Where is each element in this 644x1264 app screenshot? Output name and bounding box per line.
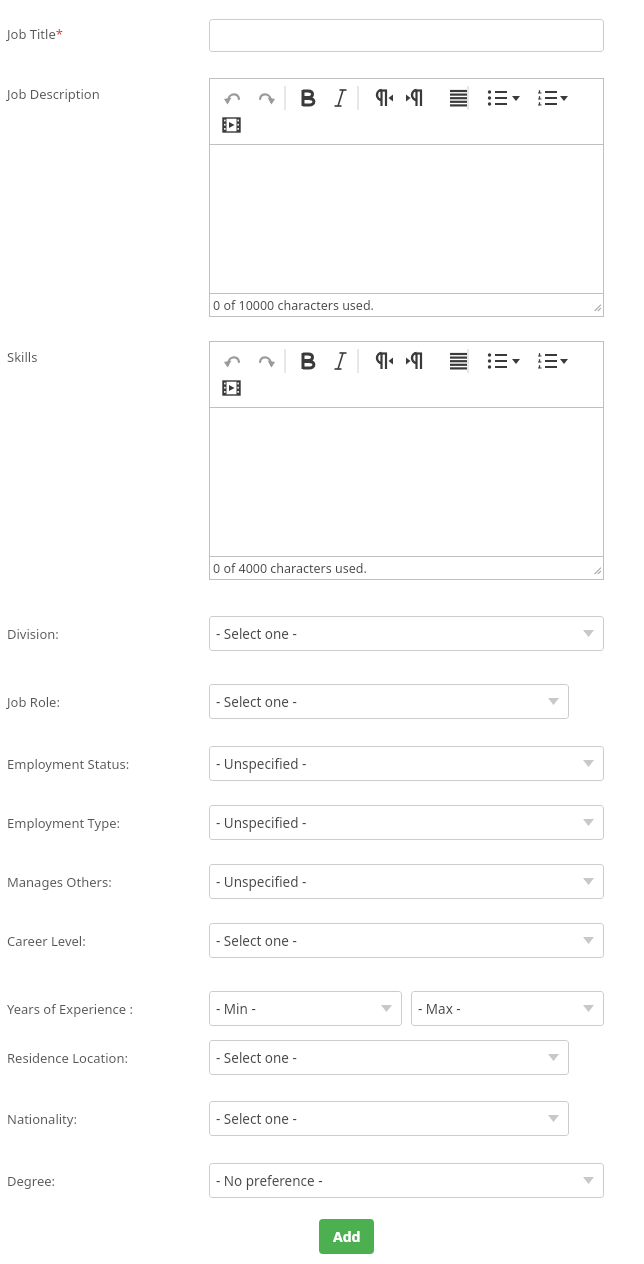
button[interactable]: - Unspecified - xyxy=(209,746,604,781)
button[interactable]: Right to left xyxy=(403,86,431,110)
staticText: Degree: xyxy=(7,1172,56,1190)
button[interactable]: - Max - xyxy=(411,991,604,1026)
button[interactable]: Job Title input xyxy=(209,19,604,52)
staticText: Employment Type: xyxy=(7,814,120,832)
staticText: - Select one - xyxy=(216,932,297,950)
button[interactable]: Editor body xyxy=(209,145,604,293)
button[interactable]: Numbered list xyxy=(527,86,555,110)
staticText: Years of Experience : xyxy=(7,1000,133,1018)
button[interactable]: Insert media xyxy=(219,379,247,403)
staticText: - Select one - xyxy=(216,1110,297,1128)
button[interactable]: - Select one - xyxy=(209,616,604,651)
button[interactable]: - No preference - xyxy=(209,1163,604,1198)
staticText: - Unspecified - xyxy=(216,814,307,832)
staticText: Career Level: xyxy=(7,932,86,950)
button[interactable]: - Unspecified - xyxy=(209,805,604,840)
button[interactable]: Right to left xyxy=(403,349,431,373)
button[interactable]: Left to right xyxy=(366,86,394,110)
button[interactable]: Undo xyxy=(223,349,251,373)
button[interactable]: - Unspecified - xyxy=(209,864,604,899)
staticText: - Max - xyxy=(418,1000,461,1018)
staticText: Manages Others: xyxy=(7,873,112,891)
button[interactable]: - Select one - xyxy=(209,684,569,719)
staticText: - Select one - xyxy=(216,625,297,643)
button[interactable]: Bold xyxy=(293,86,321,110)
staticText: Skills xyxy=(7,348,38,366)
staticText: - Unspecified - xyxy=(216,755,307,773)
button[interactable]: - Min - xyxy=(209,991,402,1026)
staticText: - Select one - xyxy=(216,693,297,711)
staticText: 0 of 10000 characters used. xyxy=(213,297,374,314)
staticText: 0 of 4000 characters used. xyxy=(213,560,367,577)
staticText: - No preference - xyxy=(216,1172,323,1190)
button[interactable]: - Select one - xyxy=(209,923,604,958)
button[interactable]: - Select one - xyxy=(209,1101,569,1136)
staticText: Add xyxy=(333,1227,361,1246)
button[interactable]: Left to right xyxy=(366,349,394,373)
staticText: - Unspecified - xyxy=(216,873,307,891)
button[interactable]: Redo xyxy=(258,86,286,110)
staticText: Job Title* xyxy=(7,25,63,43)
button[interactable]: Add xyxy=(319,1219,374,1254)
button[interactable]: Justify xyxy=(440,349,468,373)
button[interactable]: Redo xyxy=(258,349,286,373)
staticText: Residence Location: xyxy=(7,1049,128,1067)
button[interactable]: Undo xyxy=(223,86,251,110)
button[interactable]: Bold xyxy=(293,349,321,373)
button[interactable]: Italic xyxy=(329,86,357,110)
button[interactable]: Editor body xyxy=(209,408,604,556)
staticText: Job Description xyxy=(7,85,100,103)
staticText: Nationality: xyxy=(7,1110,77,1128)
button[interactable]: Bulleted list xyxy=(477,86,505,110)
staticText: - Select one - xyxy=(216,1049,297,1067)
staticText: - Min - xyxy=(216,1000,256,1018)
button[interactable]: Italic xyxy=(329,349,357,373)
button[interactable]: Insert media xyxy=(219,116,247,140)
button[interactable]: Bulleted list xyxy=(477,349,505,373)
button[interactable]: Numbered list xyxy=(527,349,555,373)
staticText: Job Role: xyxy=(7,693,60,711)
button[interactable]: Justify xyxy=(440,86,468,110)
staticText: Division: xyxy=(7,625,59,643)
staticText: Employment Status: xyxy=(7,755,130,773)
button[interactable]: - Select one - xyxy=(209,1040,569,1075)
